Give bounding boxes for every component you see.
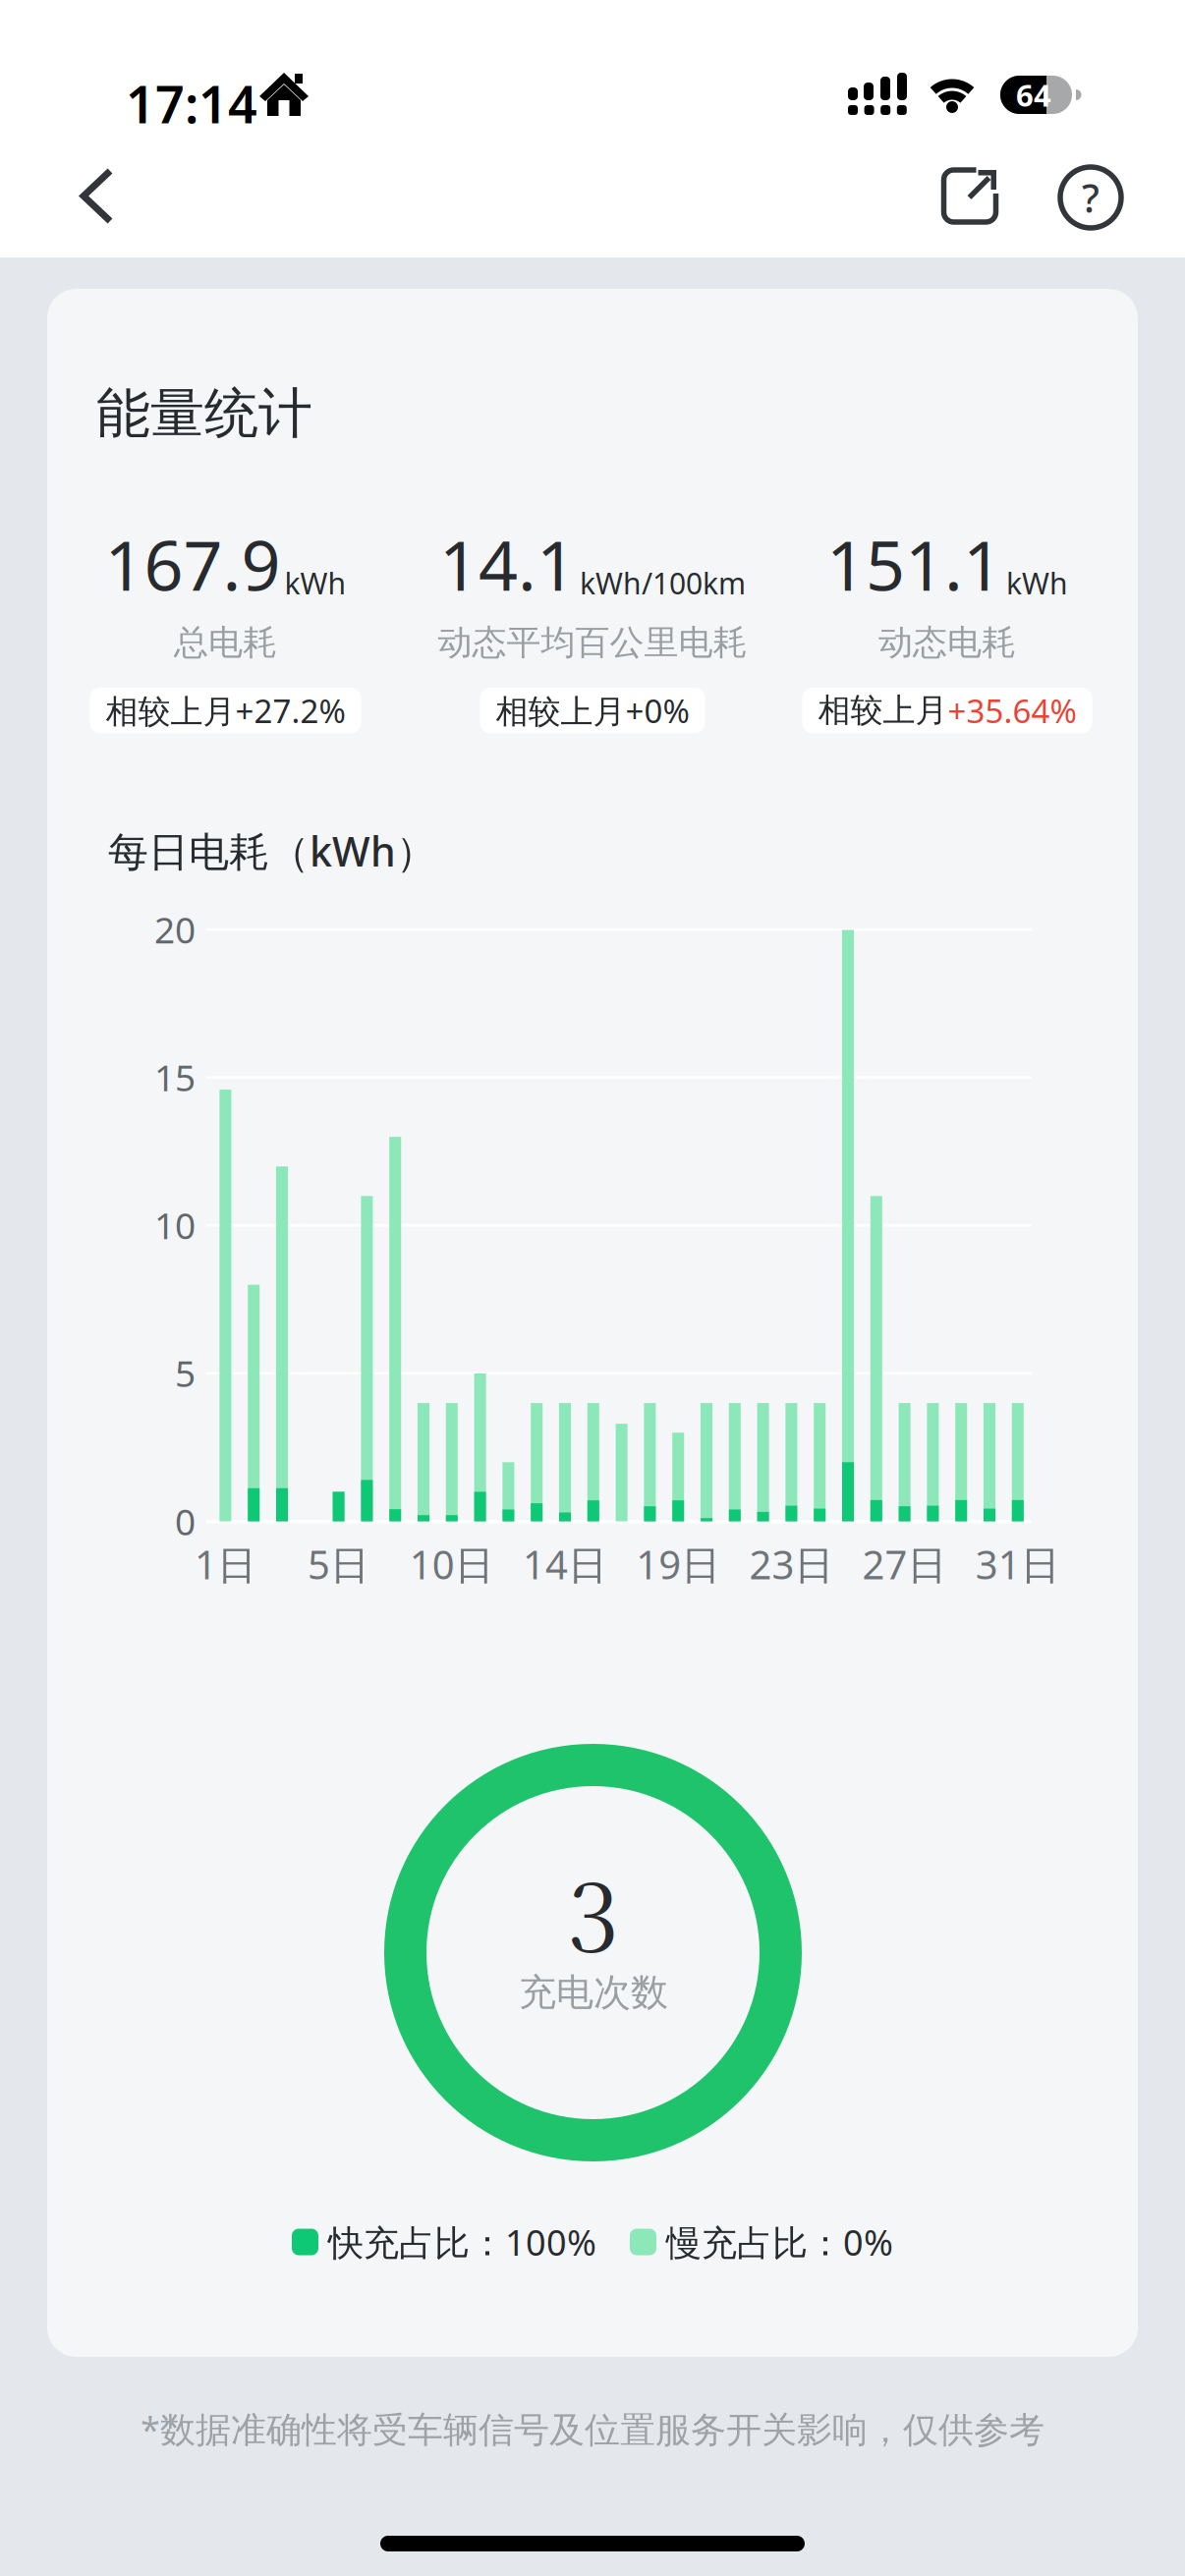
staticText: kWh [284, 563, 346, 603]
staticText: 1日 [194, 1537, 256, 1591]
staticText: 10 [154, 1200, 196, 1250]
staticText: 14日 [523, 1537, 607, 1591]
staticText: 3 [567, 1845, 620, 1979]
staticText: 64 [1016, 74, 1051, 116]
staticText: 慢充占比：0% [666, 2218, 893, 2266]
staticText: 20 [154, 905, 196, 954]
staticText: 14.1 [439, 517, 576, 611]
staticText: kWh [1006, 563, 1068, 603]
staticText: 27日 [862, 1537, 947, 1591]
staticText: 相较上月 [818, 690, 948, 731]
staticText: ? [1082, 171, 1100, 224]
staticText: 5 [175, 1348, 196, 1398]
staticText: 17:14 [126, 69, 257, 138]
button[interactable]: Share [945, 170, 998, 223]
staticText: *数据准确性将受车辆信号及位置服务开关影响，仅供参考 [141, 2405, 1044, 2453]
staticText: 总电耗 [174, 621, 277, 664]
button[interactable]: Back [69, 157, 124, 236]
staticText: 167.9 [105, 517, 281, 611]
staticText: 15 [154, 1053, 196, 1102]
staticText: 10日 [410, 1537, 494, 1591]
staticText: 动态电耗 [878, 621, 1016, 664]
staticText: 19日 [636, 1537, 720, 1591]
staticText: 相较上月+0% [496, 688, 689, 732]
staticText: 动态平均百公里电耗 [438, 621, 747, 664]
staticText: 31日 [976, 1537, 1060, 1591]
staticText: 快充占比：100% [328, 2218, 596, 2266]
staticText: 充电次数 [519, 1969, 668, 2016]
staticText: 23日 [749, 1537, 834, 1591]
staticText: 能量统计 [96, 380, 312, 448]
staticText: 151.1 [826, 517, 1002, 611]
staticText: 0 [175, 1497, 196, 1546]
button[interactable]: Help [1060, 167, 1121, 228]
staticText: 5日 [308, 1537, 370, 1591]
staticText: kWh/100km [580, 563, 746, 603]
staticText: +35.64% [948, 688, 1076, 732]
staticText: 每日电耗（kWh） [108, 823, 436, 878]
staticText: 相较上月+27.2% [106, 688, 345, 732]
